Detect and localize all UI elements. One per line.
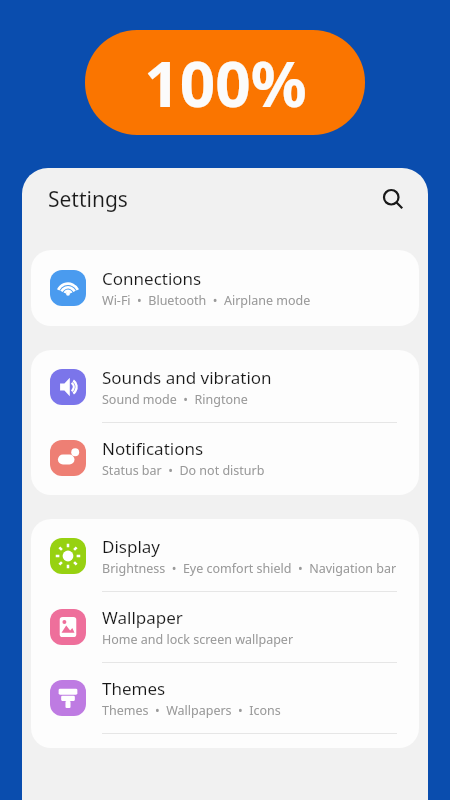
staticText: Themes • Wallpapers • Icons	[102, 702, 281, 719]
button[interactable]: Sounds and vibration	[31, 350, 419, 422]
button[interactable]: Search	[376, 182, 410, 216]
staticText: Themes	[102, 677, 166, 700]
staticText: Notifications	[102, 437, 204, 460]
staticText: Wi-Fi • Bluetooth • Airplane mode	[102, 292, 311, 309]
button[interactable]: Notifications	[31, 423, 419, 495]
staticText: Sound mode • Ringtone	[102, 391, 248, 408]
staticText: Wallpaper	[102, 606, 183, 629]
staticText: Display	[102, 535, 160, 558]
staticText: Home and lock screen wallpaper	[102, 631, 294, 648]
button[interactable]: Display	[31, 519, 419, 591]
staticText: 100%	[144, 41, 307, 125]
button[interactable]: Themes	[31, 663, 419, 733]
staticText: Status bar • Do not disturb	[102, 462, 265, 479]
staticText: Settings	[48, 185, 128, 214]
staticText: Sounds and vibration	[102, 366, 272, 389]
button[interactable]: Wallpaper	[31, 592, 419, 662]
staticText: Connections	[102, 267, 202, 290]
button[interactable]: Connections	[31, 250, 419, 326]
staticText: Brightness • Eye comfort shield • Naviga…	[102, 560, 397, 577]
button[interactable]: 100%	[85, 30, 365, 135]
